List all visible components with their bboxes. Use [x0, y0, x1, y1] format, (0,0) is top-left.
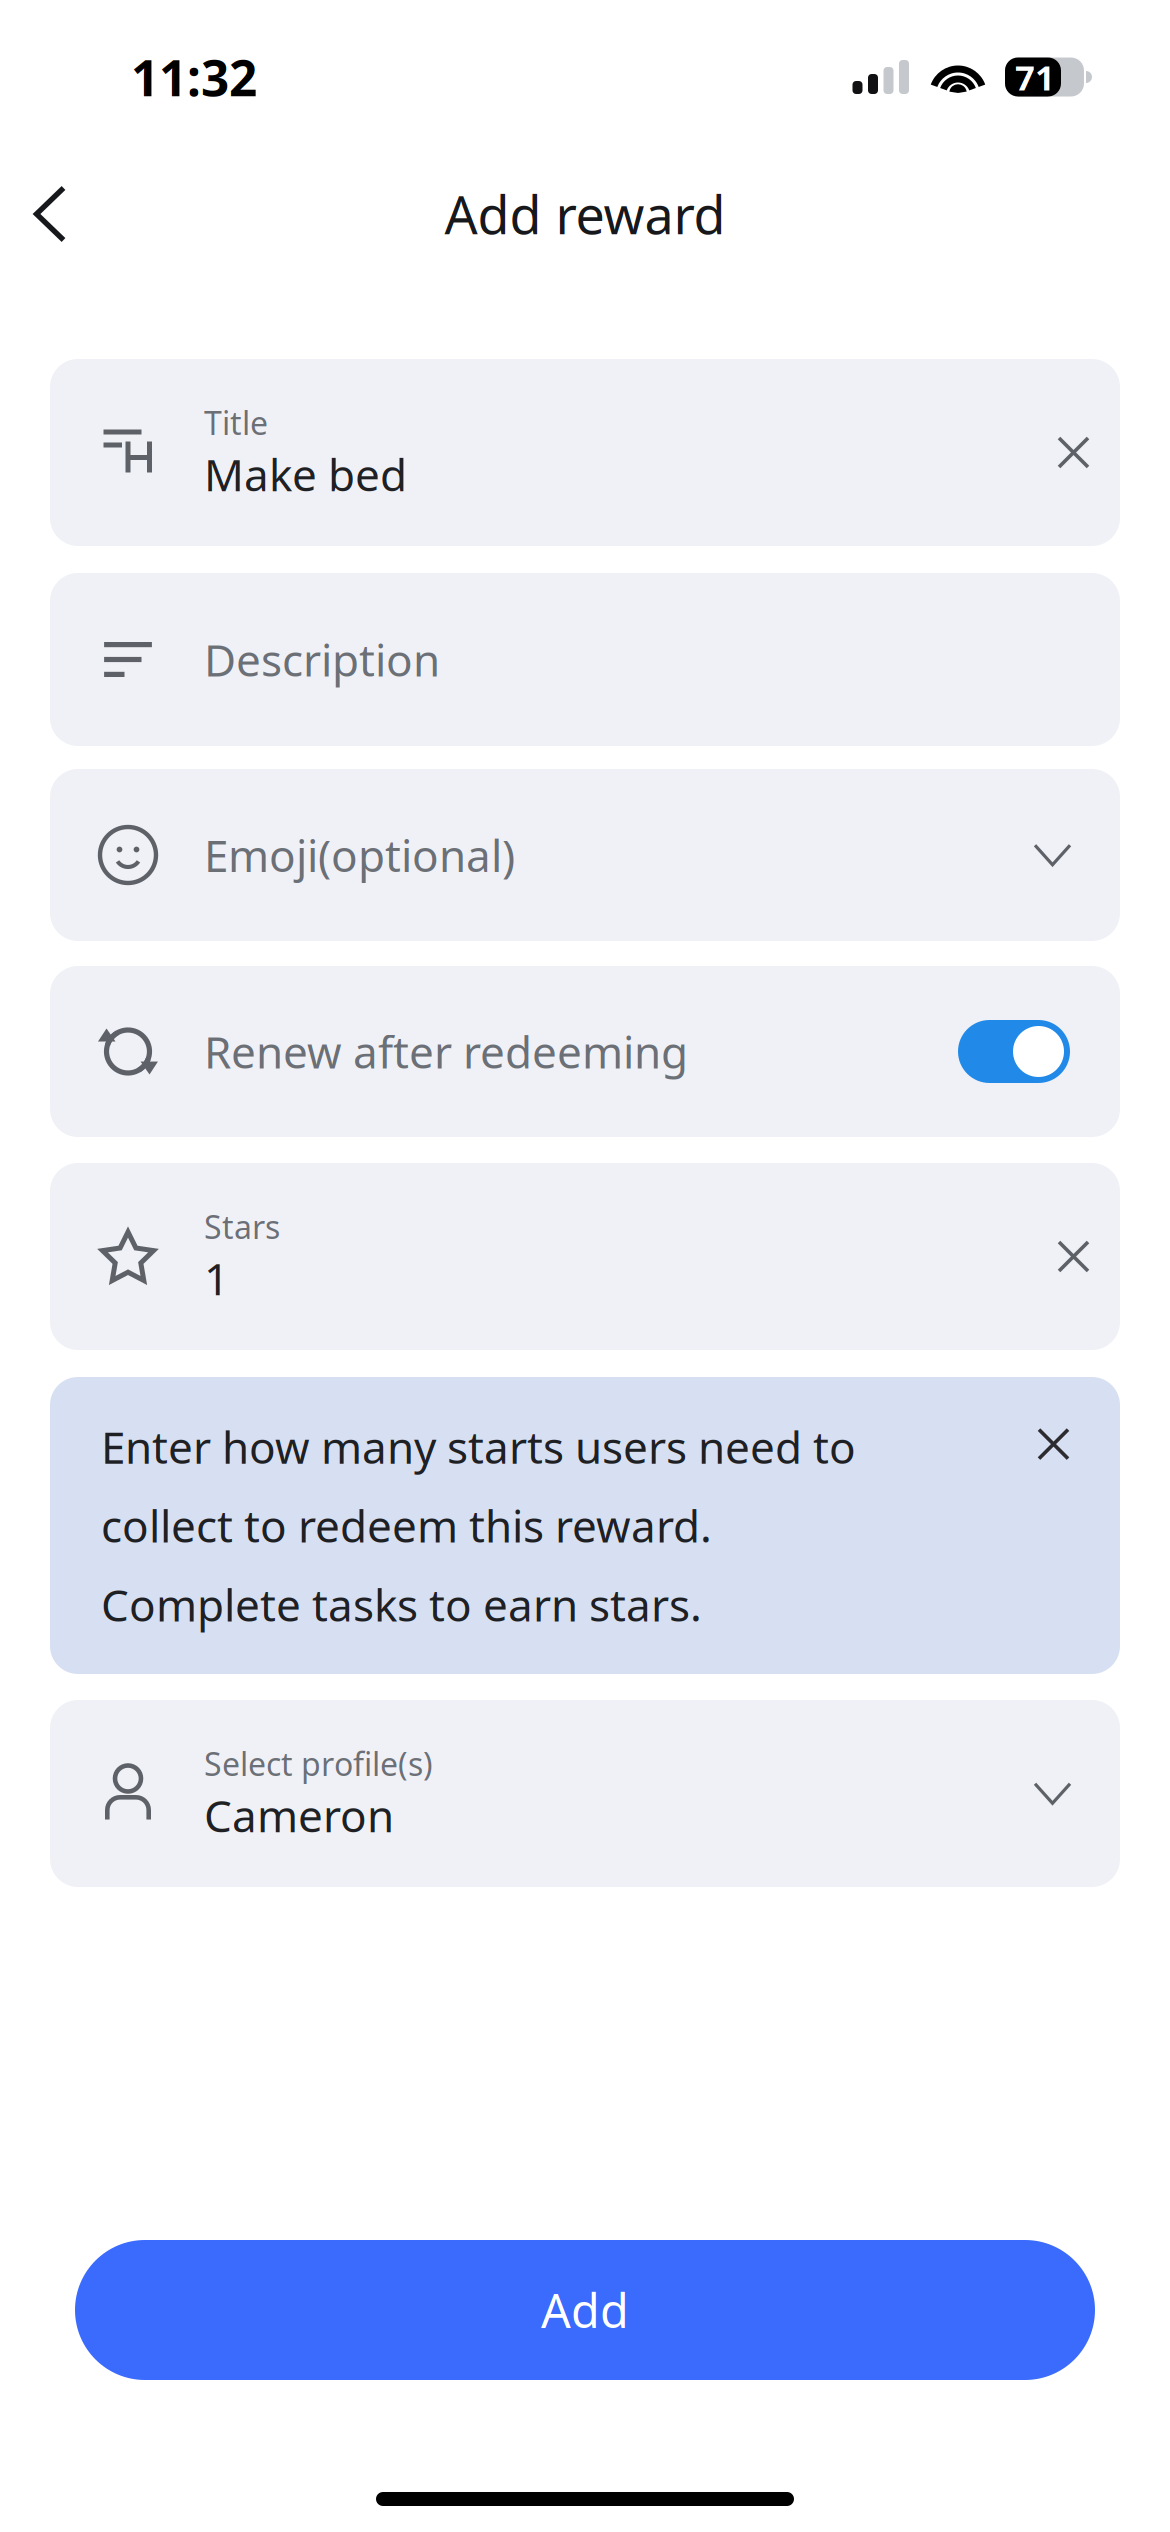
- button[interactable]: Title: [50, 359, 1120, 546]
- button[interactable]: Renew after redeeming: [50, 966, 1120, 1137]
- button[interactable]: Enter how many starts users need to coll…: [50, 1377, 1120, 1674]
- staticText: 71: [1015, 53, 1055, 101]
- staticText: Title: [204, 401, 268, 444]
- staticText: Enter how many starts users need to coll…: [101, 1417, 856, 1634]
- staticText: Make bed: [204, 444, 407, 504]
- staticText: Add reward: [444, 179, 725, 249]
- button[interactable]: Select profile(s): [50, 1700, 1120, 1887]
- staticText: Select profile(s): [204, 1742, 433, 1785]
- staticText: Renew after redeeming: [204, 1021, 688, 1081]
- button[interactable]: Description: [50, 573, 1120, 746]
- staticText: 11:32: [131, 43, 257, 111]
- staticText: Description: [204, 629, 440, 689]
- button[interactable]: Emoji(optional): [50, 769, 1120, 941]
- button[interactable]: Stars: [50, 1163, 1120, 1350]
- button[interactable]: Add: [75, 2240, 1095, 2380]
- button[interactable]: Back: [0, 154, 100, 274]
- staticText: Stars: [204, 1205, 280, 1248]
- staticText: Emoji(optional): [204, 825, 515, 885]
- staticText: Cameron: [204, 1785, 394, 1845]
- staticText: 1: [204, 1248, 229, 1308]
- staticText: Add: [541, 2278, 629, 2342]
